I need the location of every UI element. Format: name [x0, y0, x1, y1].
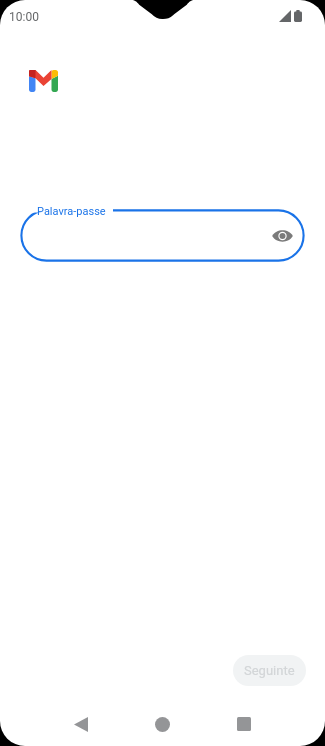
staticText: 10:00: [9, 10, 39, 24]
button[interactable]: Back: [61, 706, 101, 742]
button[interactable]: Seguinte: [233, 655, 306, 686]
staticText: Palavra-passe: [37, 205, 106, 218]
button[interactable]: Show password: [271, 224, 294, 247]
staticText: Seguinte: [244, 663, 295, 678]
button[interactable]: Home: [142, 706, 183, 742]
button[interactable]: Recent apps: [224, 706, 264, 742]
